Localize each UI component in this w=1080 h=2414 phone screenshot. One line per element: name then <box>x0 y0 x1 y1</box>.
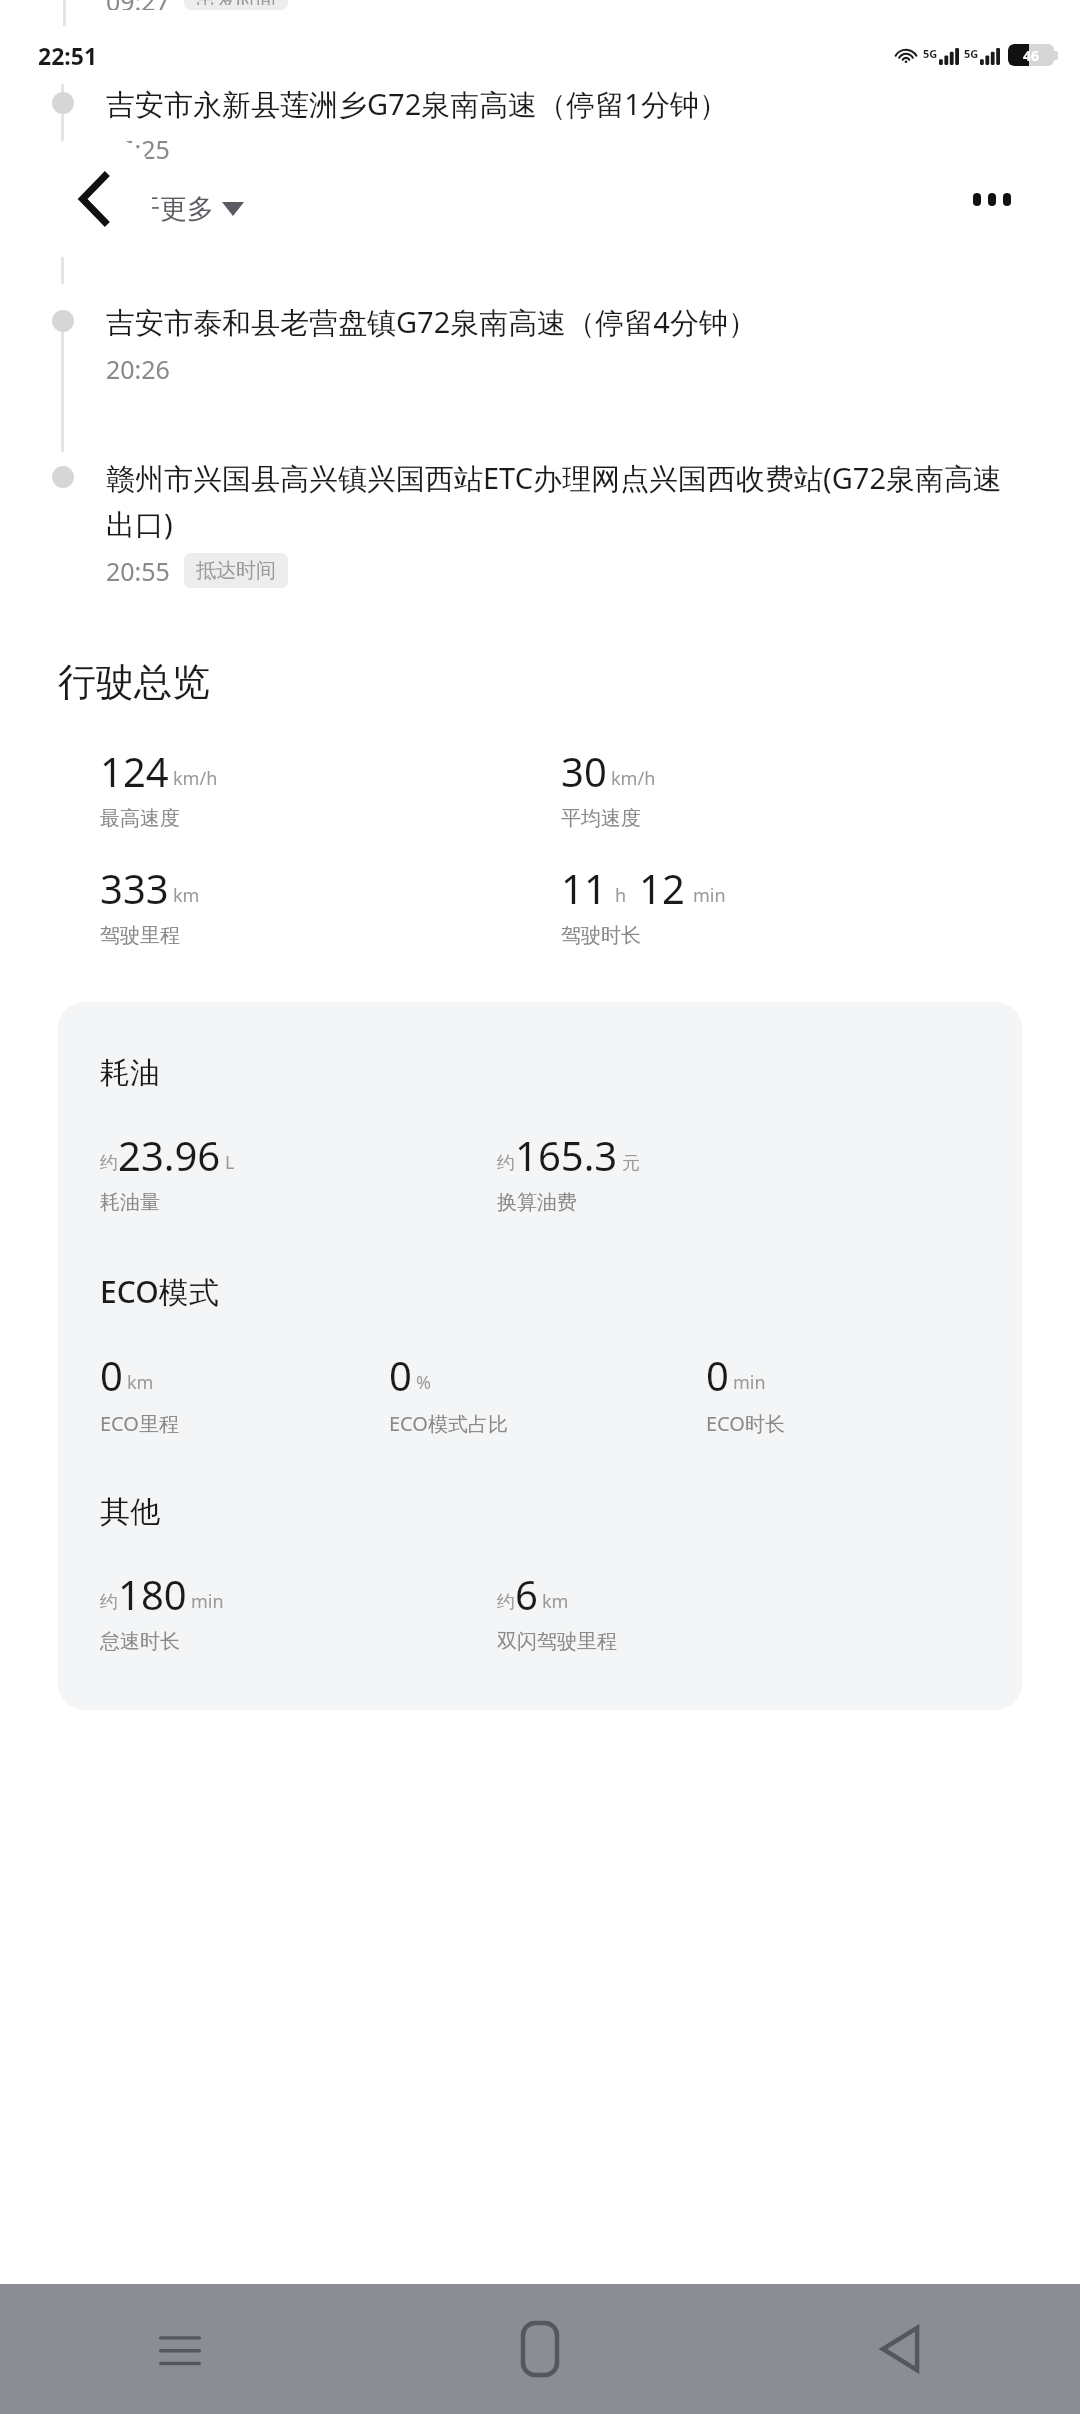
staticText: 0 <box>389 1348 412 1402</box>
staticText: 驾驶里程 <box>100 923 180 948</box>
staticText: % <box>416 1370 431 1395</box>
staticText: L <box>225 1150 235 1175</box>
button[interactable]: 展开更多 <box>106 192 244 226</box>
staticText: 15:25 <box>106 132 170 166</box>
staticText: 元 <box>622 1152 640 1175</box>
staticText: 双闪驾驶里程 <box>497 1629 617 1654</box>
staticText: 0 <box>100 1348 123 1402</box>
staticText: 333 <box>100 861 169 915</box>
staticText: 吉安市永新县莲洲乡G72泉南高速（停留1分钟） <box>106 84 728 124</box>
staticText: 124 <box>100 744 169 798</box>
staticText: 22:51 <box>38 40 98 71</box>
staticText: 46 <box>1023 46 1040 65</box>
staticText: 吉安市泰和县老营盘镇G72泉南高速（停留4分钟） <box>106 302 757 342</box>
button[interactable]: Back <box>720 2284 1080 2414</box>
staticText: ECO模式 <box>100 1271 219 1312</box>
button[interactable]: Home <box>360 2284 720 2414</box>
staticText: 09:27 <box>106 0 170 10</box>
staticText: 抵达时间 <box>196 558 276 583</box>
staticText: 180 <box>118 1567 187 1621</box>
button[interactable]: Back <box>36 138 152 260</box>
staticText: 12 <box>639 861 685 915</box>
staticText: 其他 <box>100 1493 160 1531</box>
staticText: min <box>693 883 726 908</box>
staticText: km <box>542 1589 569 1614</box>
staticText: 约 <box>100 1591 118 1614</box>
staticText: 165.3 <box>515 1128 618 1182</box>
staticText: 20:55 <box>106 554 170 588</box>
staticText: 约 <box>497 1591 515 1614</box>
staticText: 5G <box>964 46 979 61</box>
staticText: 平均速度 <box>561 806 641 831</box>
staticText: 行驶总览 <box>58 658 210 706</box>
staticText: 耗油量 <box>100 1190 160 1215</box>
staticText: km <box>127 1370 154 1395</box>
staticText: 11 <box>561 861 607 915</box>
staticText: 20:26 <box>106 352 170 386</box>
staticText: 怠速时长 <box>100 1629 180 1654</box>
button[interactable]: More options <box>934 138 1050 260</box>
staticText: 约 <box>497 1152 515 1175</box>
staticText: ECO时长 <box>706 1410 785 1437</box>
staticText: km/h <box>611 766 656 791</box>
staticText: min <box>191 1589 224 1614</box>
staticText: 5G <box>923 46 938 61</box>
staticText: 0 <box>706 1348 729 1402</box>
staticText: 30 <box>561 744 607 798</box>
staticText: ECO模式占比 <box>389 1410 508 1437</box>
staticText: km <box>173 883 200 908</box>
staticText: 展开更多 <box>106 192 214 226</box>
button[interactable]: Recent apps <box>0 2284 360 2414</box>
staticText: 驾驶时长 <box>561 923 641 948</box>
staticText: ECO里程 <box>100 1410 179 1437</box>
staticText: 23.96 <box>118 1128 221 1182</box>
staticText: 约 <box>100 1152 118 1175</box>
staticText: 换算油费 <box>497 1190 577 1215</box>
staticText: 耗油 <box>100 1054 160 1092</box>
staticText: 出发时间 <box>196 0 276 5</box>
staticText: 赣州市兴国县高兴镇兴国西站ETC办理网点兴国西收费站(G72泉南高速出口) <box>106 458 1010 543</box>
staticText: 最高速度 <box>100 806 180 831</box>
staticText: h <box>615 883 627 908</box>
staticText: km/h <box>173 766 218 791</box>
staticText: 6 <box>515 1567 538 1621</box>
staticText: min <box>733 1370 766 1395</box>
